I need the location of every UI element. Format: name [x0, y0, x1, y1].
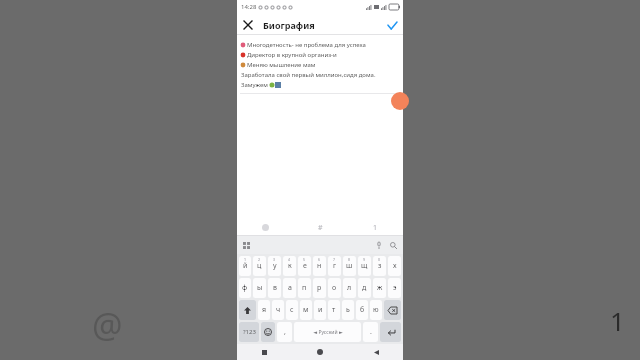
- staticText: @: [92, 302, 123, 348]
- staticText: и: [318, 305, 323, 315]
- staticText: к: [288, 261, 292, 271]
- button[interactable]: ф: [239, 278, 251, 298]
- staticText: ь: [346, 305, 350, 315]
- staticText: Заработала свой первый миллион,сидя дома…: [241, 71, 376, 79]
- staticText: .: [370, 327, 372, 337]
- button[interactable]: #: [293, 219, 348, 236]
- staticText: ◄ Русский ►: [313, 329, 343, 336]
- button[interactable]: а: [283, 278, 296, 298]
- staticText: р: [317, 283, 322, 293]
- button[interactable]: и: [314, 300, 326, 320]
- button[interactable]: щ: [358, 256, 371, 276]
- button[interactable]: ◄ Русский ►: [294, 322, 361, 342]
- button[interactable]: р: [313, 278, 326, 298]
- staticText: 3: [273, 257, 276, 262]
- staticText: б: [360, 305, 365, 315]
- staticText: ф: [242, 283, 248, 293]
- staticText: Замужем: [241, 81, 268, 89]
- staticText: 6: [318, 257, 321, 262]
- staticText: о: [332, 283, 337, 293]
- button[interactable]: [237, 219, 293, 236]
- button[interactable]: н: [313, 256, 326, 276]
- staticText: 2: [258, 257, 261, 262]
- button[interactable]: Back: [369, 345, 383, 359]
- staticText: ж: [377, 283, 383, 293]
- button[interactable]: в: [268, 278, 281, 298]
- staticText: 5: [303, 257, 306, 262]
- button[interactable]: ш: [343, 256, 356, 276]
- staticText: 1: [373, 223, 378, 233]
- button[interactable]: Backspace: [384, 300, 401, 320]
- button[interactable]: ч: [272, 300, 284, 320]
- button[interactable]: Enter: [380, 322, 401, 342]
- button[interactable]: й: [239, 256, 251, 276]
- staticText: ю: [373, 305, 379, 315]
- staticText: Директор в крупной организ-и: [247, 51, 337, 59]
- button[interactable]: ,: [277, 322, 292, 342]
- staticText: ы: [257, 283, 263, 293]
- staticText: Меняю мышление мам: [247, 61, 316, 69]
- button[interactable]: с: [286, 300, 298, 320]
- staticText: 14:28: [241, 3, 257, 11]
- staticText: д: [362, 283, 367, 293]
- staticText: п: [302, 283, 307, 293]
- button[interactable]: Shift: [239, 300, 256, 320]
- staticText: я: [262, 305, 267, 315]
- button[interactable]: .: [363, 322, 378, 342]
- button[interactable]: ж: [373, 278, 386, 298]
- button[interactable]: х: [388, 256, 401, 276]
- staticText: т: [332, 305, 336, 315]
- button[interactable]: г: [328, 256, 341, 276]
- staticText: ?123: [243, 328, 256, 336]
- button[interactable]: е: [298, 256, 311, 276]
- button[interactable]: т: [328, 300, 340, 320]
- staticText: х: [393, 261, 397, 271]
- staticText: в: [273, 283, 277, 293]
- button[interactable]: 1: [348, 219, 403, 236]
- staticText: ,: [284, 327, 286, 337]
- button[interactable]: ь: [342, 300, 354, 320]
- button[interactable]: Voice input: [373, 239, 385, 251]
- staticText: #: [318, 223, 323, 233]
- button[interactable]: Save: [384, 17, 400, 33]
- staticText: а: [288, 283, 292, 293]
- button[interactable]: Search: [387, 239, 399, 251]
- button[interactable]: д: [358, 278, 371, 298]
- staticText: м: [303, 305, 309, 315]
- staticText: 9: [363, 257, 366, 262]
- button[interactable]: ы: [253, 278, 266, 298]
- staticText: 0: [378, 257, 381, 262]
- button[interactable]: Emoji: [261, 322, 275, 342]
- staticText: Многодетность- не проблема для успеха: [247, 41, 366, 49]
- button[interactable]: з: [373, 256, 386, 276]
- button[interactable]: Numbers and symbols: [239, 322, 259, 342]
- button[interactable]: б: [356, 300, 368, 320]
- button[interactable]: о: [328, 278, 341, 298]
- staticText: й: [243, 261, 248, 271]
- staticText: е: [303, 261, 307, 271]
- button[interactable]: ю: [370, 300, 382, 320]
- staticText: н: [317, 261, 322, 271]
- button[interactable]: у: [268, 256, 281, 276]
- staticText: 7: [333, 257, 336, 262]
- button[interactable]: Clipboard: [240, 239, 252, 251]
- button[interactable]: л: [343, 278, 356, 298]
- staticText: 1: [610, 303, 625, 338]
- staticText: ц: [257, 261, 262, 271]
- staticText: Биография: [263, 19, 315, 31]
- button[interactable]: Recents: [257, 345, 271, 359]
- button[interactable]: п: [298, 278, 311, 298]
- staticText: л: [347, 283, 352, 293]
- staticText: ч: [276, 305, 281, 315]
- button[interactable]: м: [300, 300, 312, 320]
- button[interactable]: Close: [240, 17, 256, 33]
- button[interactable]: ц: [253, 256, 266, 276]
- staticText: э: [393, 283, 397, 293]
- button[interactable]: я: [258, 300, 270, 320]
- button[interactable]: э: [388, 278, 401, 298]
- staticText: с: [290, 305, 294, 315]
- staticText: з: [378, 261, 382, 271]
- staticText: 8: [348, 257, 351, 262]
- button[interactable]: к: [283, 256, 296, 276]
- button[interactable]: Home: [313, 345, 327, 359]
